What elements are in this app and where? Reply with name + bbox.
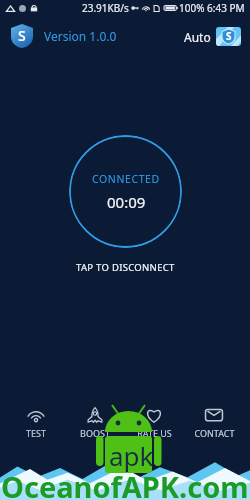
staticText: CONTACT <box>194 427 235 439</box>
button[interactable]: RATE US <box>124 404 184 442</box>
staticText: TAP TO DISCONNECT <box>76 261 175 274</box>
staticText: apk <box>109 438 154 473</box>
staticText: TEST <box>26 427 46 439</box>
button[interactable]: BOOST <box>65 404 124 442</box>
staticText: OceanofAPK.com <box>1 467 249 500</box>
button[interactable]: Auto <box>184 27 241 46</box>
staticText: S <box>226 29 232 43</box>
staticText: RATE US <box>137 427 172 439</box>
staticText: Auto <box>184 29 211 45</box>
staticText: BOOST <box>80 427 110 439</box>
staticText: 100% 6:43 PM <box>179 1 245 15</box>
staticText: Version 1.0.0 <box>44 28 117 44</box>
staticText: S <box>18 26 26 45</box>
button[interactable]: CONTACT <box>184 404 244 442</box>
staticText: 00:09 <box>107 192 146 212</box>
button[interactable]: TEST <box>6 404 65 442</box>
staticText: CONNECTED <box>92 172 160 186</box>
staticText: 23.91KB/s <box>82 1 129 15</box>
button[interactable]: CONNECTED <box>69 135 182 248</box>
